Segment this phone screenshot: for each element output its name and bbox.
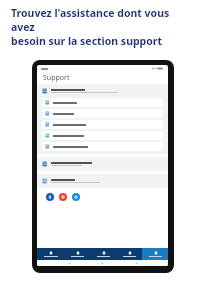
button[interactable] <box>42 142 163 151</box>
staticText: Trouvez l'assistance dont vous avez beso… <box>11 6 193 48</box>
button[interactable]: Menu <box>116 248 142 260</box>
button[interactable]: Support <box>142 248 168 260</box>
button[interactable] <box>42 109 163 118</box>
button[interactable] <box>42 131 163 140</box>
button[interactable]: Menu <box>37 248 64 260</box>
button[interactable] <box>42 160 163 168</box>
button[interactable] <box>42 98 163 107</box>
button[interactable] <box>42 177 163 185</box>
button[interactable] <box>42 120 163 129</box>
staticText: Support <box>43 73 70 83</box>
button[interactable]: Menu <box>90 248 116 260</box>
button[interactable]: Facebook <box>46 193 54 201</box>
button[interactable]: Twitter <box>72 193 80 201</box>
button[interactable] <box>42 87 163 95</box>
button[interactable]: Menu <box>64 248 90 260</box>
button[interactable]: YouTube <box>59 193 67 201</box>
